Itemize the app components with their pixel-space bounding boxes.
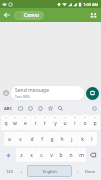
button[interactable]: ABC	[3, 105, 13, 112]
button[interactable]: 123	[2, 164, 17, 178]
staticText: Send message	[15, 87, 50, 94]
staticText: t	[44, 120, 46, 127]
button[interactable]: a	[4, 132, 15, 146]
button[interactable]: 8	[70, 115, 80, 130]
staticText: b	[59, 152, 63, 159]
staticText: x	[30, 152, 33, 159]
staticText: q	[4, 120, 8, 127]
staticText: 9	[84, 115, 86, 118]
button[interactable]: h	[57, 132, 67, 146]
button[interactable]: Shift	[1, 148, 16, 162]
staticText: y	[54, 120, 57, 127]
button[interactable]: 6	[50, 115, 60, 130]
button[interactable]: English	[27, 165, 72, 177]
button[interactable]: Search	[57, 105, 64, 112]
staticText: 3	[24, 115, 26, 118]
button[interactable]: s	[15, 132, 26, 146]
staticText: 6	[54, 115, 56, 118]
staticText: English	[43, 169, 57, 174]
button[interactable]: Back	[3, 11, 11, 19]
button[interactable]: z	[16, 148, 26, 162]
staticText: e	[24, 120, 27, 127]
button[interactable]: k	[77, 132, 87, 146]
staticText: 123	[6, 169, 13, 174]
staticText: 8	[74, 115, 76, 118]
button[interactable]: 3	[20, 115, 30, 130]
button[interactable]: v	[46, 148, 56, 162]
button[interactable]: c	[36, 148, 46, 162]
staticText: 5	[44, 115, 46, 118]
button[interactable]: n	[66, 148, 76, 162]
staticText: c	[40, 152, 43, 159]
staticText: h	[60, 136, 64, 143]
button[interactable]: f	[37, 132, 47, 146]
button[interactable]: 1	[1, 115, 10, 130]
staticText: a	[8, 136, 11, 143]
staticText: Text SMS	[15, 94, 30, 99]
button[interactable]: Send	[86, 87, 99, 100]
staticText: i	[74, 120, 76, 127]
staticText: l	[91, 136, 93, 143]
button[interactable]: ,	[17, 164, 26, 178]
staticText: w	[13, 120, 17, 127]
button[interactable]: 0	[90, 115, 100, 130]
button[interactable]: Clipboard	[37, 105, 44, 112]
staticText: z	[20, 152, 23, 159]
button[interactable]: Convo	[14, 11, 44, 20]
staticText: Done	[85, 169, 96, 174]
button[interactable]: Stickers	[27, 105, 34, 112]
staticText: .	[77, 168, 79, 175]
button[interactable]: Send message	[11, 86, 84, 100]
staticText: Convo	[24, 12, 40, 19]
staticText: j	[71, 136, 73, 143]
button[interactable]: g	[47, 132, 57, 146]
button[interactable]: Backspace	[86, 148, 100, 162]
staticText: g	[50, 136, 54, 143]
staticText: n	[69, 152, 73, 159]
staticText: 1	[5, 115, 7, 118]
button[interactable]: More options	[91, 105, 98, 112]
staticText: p	[93, 120, 97, 127]
staticText: 1:00 AM	[83, 2, 99, 7]
staticText: 7	[64, 115, 66, 118]
staticText: ABC	[4, 106, 12, 111]
staticText: 2	[14, 115, 16, 118]
staticText: 4	[34, 115, 36, 118]
button[interactable]: m	[76, 148, 86, 162]
staticText: v	[50, 152, 53, 159]
button[interactable]: 9	[80, 115, 90, 130]
staticText: k	[81, 136, 84, 143]
button[interactable]: Emoji	[2, 89, 10, 97]
button[interactable]: .	[73, 164, 82, 178]
button[interactable]: GIF	[17, 105, 24, 112]
button[interactable]: 2	[10, 115, 20, 130]
staticText: d	[30, 136, 34, 143]
staticText: 0	[94, 115, 96, 118]
staticText: s	[19, 136, 22, 143]
button[interactable]: 4	[30, 115, 40, 130]
button[interactable]: 7	[60, 115, 70, 130]
button[interactable]: j	[67, 132, 77, 146]
staticText: f	[41, 136, 43, 143]
button[interactable]: Done	[82, 164, 99, 178]
button[interactable]: Add people	[89, 11, 98, 20]
button[interactable]: x	[26, 148, 36, 162]
button[interactable]: Theme	[47, 105, 54, 112]
staticText: o	[83, 120, 87, 127]
staticText: m	[79, 152, 84, 159]
staticText: ,	[21, 168, 23, 175]
staticText: u	[63, 120, 67, 127]
button[interactable]: d	[26, 132, 37, 146]
staticText: r	[34, 120, 37, 127]
button[interactable]: b	[56, 148, 66, 162]
button[interactable]: 5	[40, 115, 50, 130]
button[interactable]: l	[87, 132, 97, 146]
